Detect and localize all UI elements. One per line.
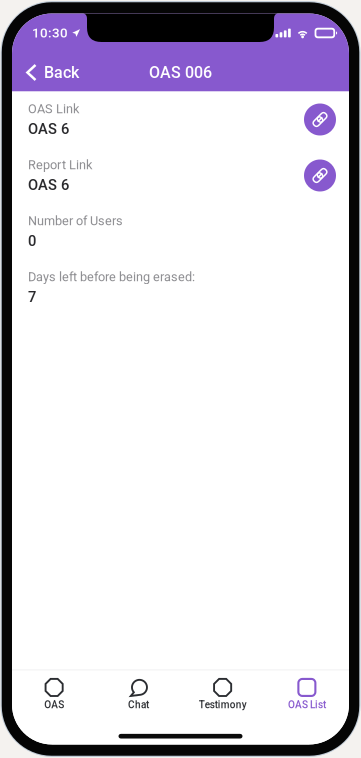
button[interactable]: Back [12, 58, 89, 87]
staticText: OAS 6 [28, 120, 69, 137]
staticText: Days left before being erased: [28, 269, 195, 284]
button[interactable]: OAS [12, 676, 96, 712]
staticText: OAS List [288, 699, 326, 711]
staticText: Chat [128, 699, 149, 711]
staticText: OAS Link [28, 101, 79, 116]
button[interactable]: Testimony [180, 676, 265, 712]
button[interactable]: Open OAS Link [304, 103, 336, 135]
staticText: 0 [28, 232, 36, 249]
staticText: 10:30 [32, 25, 68, 41]
staticText: OAS 6 [28, 176, 69, 193]
staticText: Back [44, 63, 79, 82]
staticText: OAS 006 [149, 63, 212, 82]
button[interactable]: OAS List [265, 676, 349, 712]
staticText: OAS [44, 699, 64, 711]
staticText: 7 [28, 288, 36, 305]
staticText: Number of Users [28, 213, 123, 228]
staticText: Report Link [28, 157, 92, 172]
staticText: Testimony [199, 699, 247, 711]
button[interactable]: Open Report Link [304, 159, 336, 191]
button[interactable]: Chat [96, 676, 180, 712]
